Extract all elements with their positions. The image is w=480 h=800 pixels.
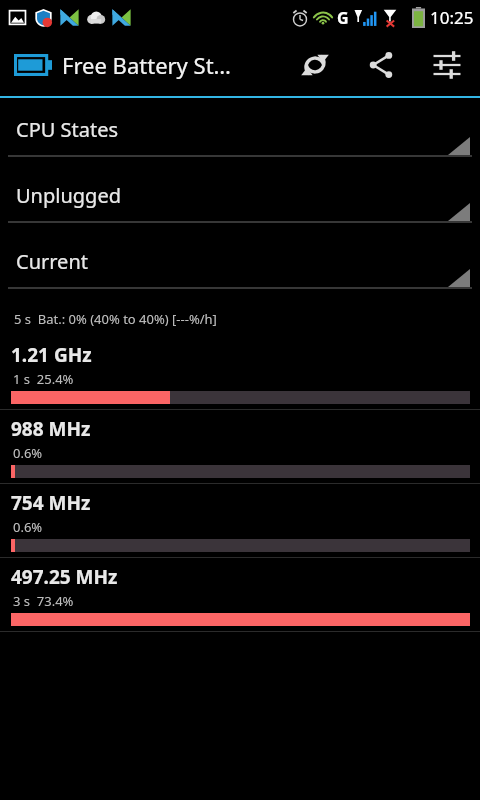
button[interactable]: 1.21 GHz [0,336,480,410]
staticText: Free Battery St… [62,50,231,80]
staticText: 0.6% [13,518,43,536]
button[interactable]: Unplugged [0,169,480,235]
staticText: Unplugged [16,182,121,209]
staticText: 5 s Bat.: 0% (40% to 40%) [---%/h] [14,310,217,328]
staticText: 988 MHz [11,416,91,442]
button[interactable]: CPU States [0,103,480,169]
staticText: 497.25 MHz [11,564,118,590]
button[interactable]: 754 MHz [0,484,480,558]
staticText: 3 s 73.4% [13,592,74,610]
staticText: 1.21 GHz [11,342,92,368]
staticText: CPU States [16,116,119,143]
button[interactable]: Current [0,235,480,301]
button[interactable]: Share [348,34,414,96]
staticText: G [337,7,349,29]
staticText: 754 MHz [11,490,91,516]
button[interactable]: Refresh [282,34,348,96]
staticText: 1 s 25.4% [13,370,74,388]
staticText: 0.6% [13,444,43,462]
button[interactable]: Settings [414,34,480,96]
button[interactable]: 988 MHz [0,410,480,484]
button[interactable]: Free Battery St… [0,50,282,80]
button[interactable]: 497.25 MHz [0,558,480,632]
staticText: Current [16,248,88,275]
staticText: 10:25 [430,6,474,29]
